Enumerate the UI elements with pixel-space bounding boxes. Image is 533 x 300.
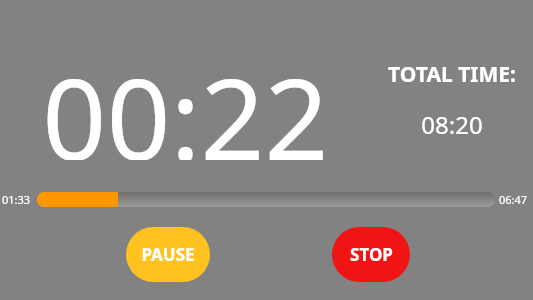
staticText: 00:22 — [42, 40, 329, 160]
staticText: PAUSE — [141, 243, 195, 266]
staticText: 06:47 — [499, 192, 528, 207]
button[interactable]: STOP — [332, 227, 410, 282]
staticText: STOP — [350, 243, 393, 266]
button[interactable]: PAUSE — [126, 227, 210, 282]
staticText: 01:33 — [2, 192, 31, 207]
staticText: TOTAL TIME: — [388, 60, 516, 88]
staticText: 08:20 — [421, 108, 483, 138]
